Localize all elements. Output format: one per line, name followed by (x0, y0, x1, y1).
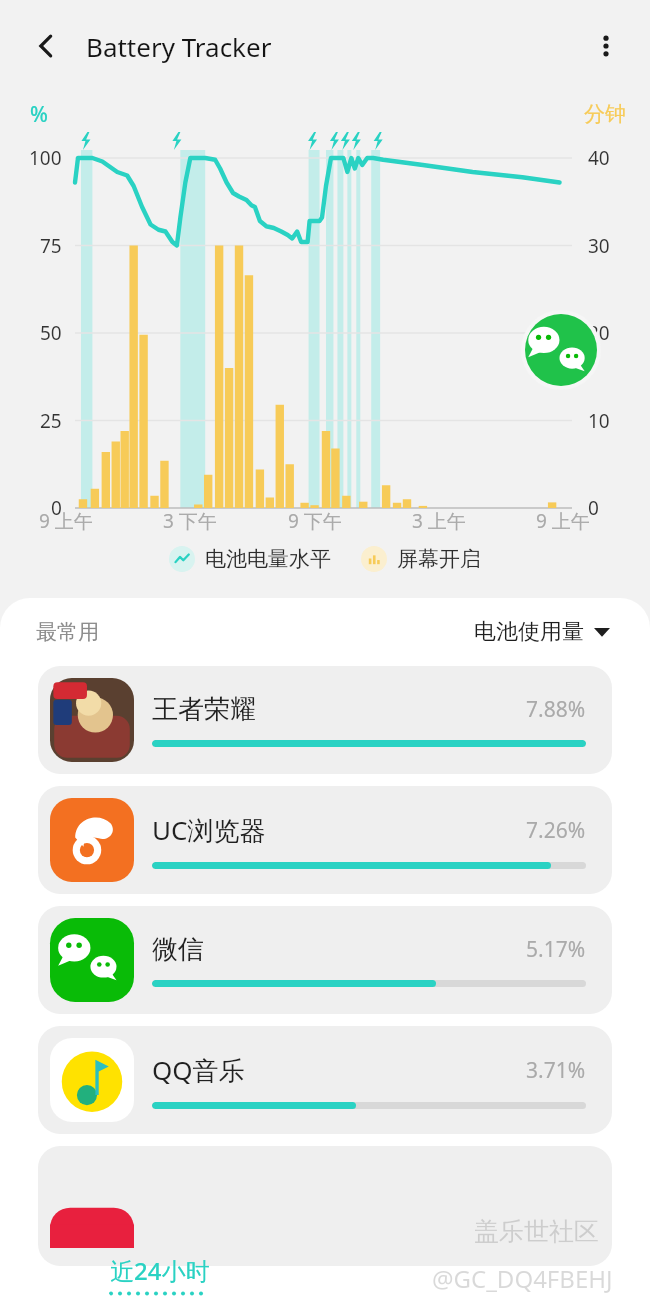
staticText: 100 (29, 145, 62, 171)
button[interactable]: More options (580, 20, 632, 72)
staticText: @GC_DQ4FBEHJ (432, 1262, 613, 1295)
button[interactable]: QQ音乐 (38, 1026, 612, 1134)
button[interactable]: WeChat (521, 310, 601, 390)
staticText: UC浏览器 (152, 812, 266, 848)
staticText: 7.88% (526, 695, 586, 724)
staticText: 0 (51, 495, 62, 521)
staticText: 5.17% (526, 935, 586, 964)
staticText: 9 下午 (288, 508, 342, 534)
staticText: 7.26% (526, 816, 586, 845)
staticText: 3 上午 (412, 508, 466, 534)
staticText: 25 (40, 408, 62, 434)
staticText: 电池电量水平 (205, 546, 331, 572)
staticText: 最常用 (36, 619, 99, 645)
staticText: 盖乐世社区 (474, 1216, 599, 1247)
button[interactable]: 王者荣耀 (38, 666, 612, 774)
staticText: 50 (40, 320, 62, 346)
button[interactable]: 近24小时 (108, 1252, 212, 1298)
staticText: 20 (588, 320, 610, 346)
staticText: 微信 (152, 933, 204, 966)
staticText: 王者荣耀 (152, 693, 256, 726)
staticText: 电池使用量 (474, 618, 584, 646)
button[interactable] (38, 1146, 612, 1266)
staticText: 0 (588, 495, 599, 521)
staticText: 屏幕开启 (397, 546, 481, 572)
button[interactable]: 屏幕开启 (357, 542, 485, 576)
button[interactable]: 电池使用量 (470, 614, 614, 650)
button[interactable]: UC浏览器 (38, 786, 612, 894)
staticText: 40 (588, 145, 610, 171)
staticText: 30 (588, 233, 610, 259)
staticText: % (30, 100, 48, 129)
staticText: 近24小时 (110, 1254, 210, 1287)
button[interactable]: 微信 (38, 906, 612, 1014)
button[interactable]: Back (20, 20, 72, 72)
staticText: 3 下午 (163, 508, 217, 534)
staticText: 10 (588, 408, 610, 434)
staticText: 分钟 (584, 101, 626, 127)
staticText: 75 (40, 233, 62, 259)
staticText: 3.71% (526, 1056, 586, 1085)
staticText: QQ音乐 (152, 1052, 245, 1088)
staticText: 9 上午 (39, 508, 93, 534)
staticText: Battery Tracker (86, 29, 272, 64)
button[interactable]: 电池电量水平 (165, 542, 335, 576)
staticText: 9 上午 (536, 508, 590, 534)
